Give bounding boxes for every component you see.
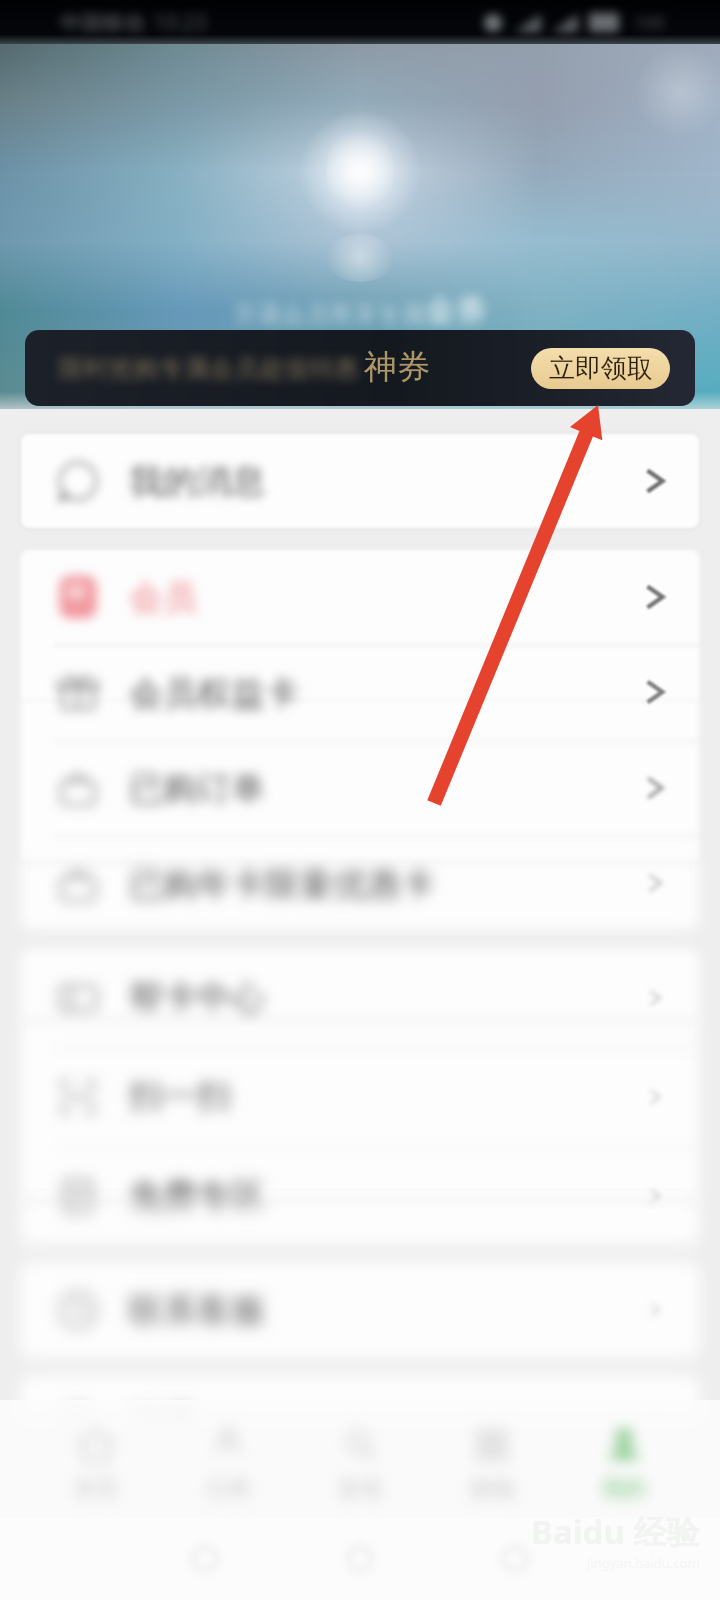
button[interactable]: 已购年卡限量优惠卡 [20,836,700,932]
button[interactable]: 扫一扫 [20,1047,700,1146]
button[interactable]: 免费专区 [20,1146,700,1245]
button[interactable]: 扫一扫 [20,1047,700,1146]
staticText: 帮卡中心 [129,976,265,1019]
button[interactable]: 已购年卡限量优惠卡 [20,836,700,932]
button[interactable]: 已购订单 [20,740,700,836]
staticText: 10:23 [153,8,207,37]
staticText: 我的消息 [129,460,265,503]
button[interactable]: 联系客服 [20,1262,700,1358]
button[interactable]: 已购订单 [20,740,700,836]
button[interactable]: 会员权益卡 [20,645,700,741]
button[interactable]: 会员 [20,549,700,645]
staticText: 100 [634,10,665,35]
button[interactable]: 设置 [20,1375,700,1471]
button[interactable]: 免费专区 [20,1146,700,1245]
button[interactable]: 扫一扫 [20,1047,700,1146]
staticText: 会员 [129,576,197,619]
staticText: 免费专区 [129,1174,265,1217]
button[interactable]: 我的消息 [20,433,700,529]
button[interactable]: 免费专区 [20,1146,700,1245]
button[interactable]: 帮卡中心 [20,948,700,1047]
button[interactable]: 会员 [20,549,700,645]
button[interactable]: 立即领取 [531,348,670,389]
button[interactable]: 帮卡中心 [20,948,700,1047]
button[interactable]: 免费专区 [20,1146,700,1245]
button[interactable]: 联系客服 [20,1262,700,1358]
staticText: 会员权益卡 [129,672,299,715]
button[interactable]: 我的消息 [20,433,700,529]
button[interactable]: 帮卡中心 [20,948,700,1047]
button[interactable]: 已购年卡限量优惠卡 [20,836,700,932]
button[interactable]: 扫一扫 [20,1047,700,1146]
button[interactable]: 购物 [426,1416,558,1512]
button[interactable]: 帮卡中心 [20,948,700,1047]
staticText: 已购订单 [129,767,265,810]
staticText: 已购订单 [129,767,265,810]
button[interactable]: 我的消息 [20,433,700,529]
button[interactable]: 会员 [20,549,700,645]
button[interactable]: 会员 [20,549,700,645]
button[interactable]: 首页 [30,1416,162,1512]
staticText: 会员权益卡 [129,672,299,715]
button[interactable]: 扫一扫 [20,1047,700,1146]
button[interactable]: 已购年卡限量优惠卡 [20,836,700,932]
button[interactable]: 设置 [20,1375,700,1471]
staticText: 已购年卡限量优惠卡 [129,863,435,906]
button[interactable]: 会员权益卡 [20,645,700,741]
button[interactable]: 我的消息 [20,433,700,529]
button[interactable]: 设置 [20,1375,700,1471]
button[interactable]: 会员权益卡 [20,645,700,741]
button[interactable]: 已购年卡限量优惠卡 [20,836,700,932]
button[interactable]: 免费专区 [20,1146,700,1245]
button[interactable]: 我的消息 [20,433,700,529]
button[interactable]: 会员权益卡 [20,645,700,741]
staticText: 帮卡中心 [129,976,265,1019]
button[interactable]: 联系客服 [20,1262,700,1358]
button[interactable]: 已购订单 [20,740,700,836]
button[interactable]: 分类 [162,1416,294,1512]
staticText: 会员 [129,576,197,619]
button[interactable]: 联系客服 [20,1262,700,1358]
button[interactable]: 联系客服 [20,1262,700,1358]
staticText: 免费专区 [129,1174,265,1217]
staticText: 扫一扫 [129,1075,231,1118]
button[interactable]: 设置 [20,1375,700,1471]
button[interactable]: 联系客服 [20,1262,700,1358]
button[interactable]: 设置 [20,1375,700,1471]
staticText: 已购订单 [129,767,265,810]
button[interactable]: 会员权益卡 [20,645,700,741]
staticText: 会员 [129,576,197,619]
staticText: 扫一扫 [129,1075,231,1118]
button[interactable]: 我的消息 [20,433,700,529]
button[interactable]: 已购订单 [20,740,700,836]
staticText: 我的消息 [129,460,265,503]
button[interactable]: 限时抢购专属会员超值特惠 [25,330,695,406]
button[interactable]: 发现 [294,1416,426,1512]
button[interactable]: 已购年卡限量优惠卡 [20,836,700,932]
button[interactable]: 扫一扫 [20,1047,700,1146]
button[interactable]: 会员权益卡 [20,645,700,741]
staticText: 开通会员尊享专属 [233,300,425,330]
staticText: 扫一扫 [129,1075,231,1118]
button[interactable]: 会员 [20,549,700,645]
button[interactable]: 会员 [20,549,700,645]
button[interactable]: 设置 [20,1375,700,1471]
staticText: 帮卡中心 [129,976,265,1019]
staticText: 会员权益卡 [129,672,299,715]
button[interactable]: 我的 [558,1416,690,1512]
button[interactable]: 已购订单 [20,740,700,836]
button[interactable]: 帮卡中心 [20,948,700,1047]
staticText: 扫一扫 [129,1075,231,1118]
button[interactable]: 免费专区 [20,1146,700,1245]
staticText: 购物 [470,1475,514,1503]
button[interactable]: 已购订单 [20,740,700,836]
button[interactable]: 帮卡中心 [20,948,700,1047]
